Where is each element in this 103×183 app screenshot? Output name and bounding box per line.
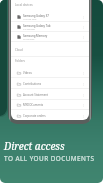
staticText: Direct access	[4, 139, 65, 153]
staticText: TO ALL YOUR DOCUMENTS	[4, 154, 95, 163]
button[interactable]: Contributions	[11, 79, 89, 89]
button[interactable]: Account Statement	[11, 90, 89, 100]
staticText: Corporate orders	[23, 114, 46, 118]
other: More options	[82, 83, 85, 86]
button[interactable]: Samsung Galaxy S7	[11, 12, 89, 22]
button[interactable]: MYDOCuments	[11, 100, 89, 110]
staticText: Contributions	[23, 82, 42, 86]
button[interactable]: Samsung Galaxy Tab	[11, 22, 89, 32]
staticText: Samsung Memory	[23, 34, 48, 38]
staticText: Folders	[15, 59, 25, 63]
other: More options	[82, 36, 85, 39]
staticText: 12.8 GB free	[23, 18, 37, 21]
staticText: Cloud	[15, 48, 23, 52]
other: More options	[82, 115, 85, 118]
staticText: Account Statement	[23, 93, 48, 97]
other: More options	[82, 16, 85, 19]
button[interactable]: Videos	[11, 68, 89, 78]
other: More options	[82, 94, 85, 97]
staticText: Local devices	[15, 3, 33, 7]
button[interactable]: Corporate orders	[11, 111, 89, 120]
staticText: Samsung Galaxy S7	[23, 14, 49, 18]
staticText: 4.2 GB free	[23, 28, 35, 31]
other: More options	[82, 72, 85, 75]
button[interactable]: Samsung Memory	[11, 32, 89, 42]
staticText: MYDOCuments	[23, 103, 44, 107]
other: More options	[82, 104, 85, 107]
other: More options	[82, 26, 85, 29]
staticText: 32 GB free	[23, 38, 35, 41]
staticText: Samsung Galaxy Tab	[23, 24, 51, 28]
staticText: Videos	[23, 71, 32, 75]
